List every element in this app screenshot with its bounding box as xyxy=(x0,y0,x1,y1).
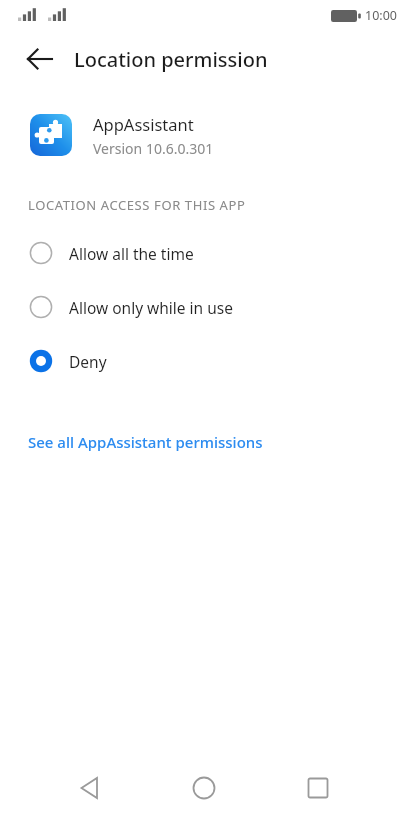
staticText: Location permission xyxy=(74,46,268,73)
staticText: See all AppAssistant permissions xyxy=(28,432,263,452)
staticText: Allow only while in use xyxy=(69,297,233,318)
staticText: LOCATION ACCESS FOR THIS APP xyxy=(28,196,246,214)
button[interactable]: Recents xyxy=(294,764,342,812)
button[interactable]: Back xyxy=(18,37,62,81)
staticText: Version 10.6.0.301 xyxy=(93,139,214,158)
button[interactable]: Home xyxy=(180,764,228,812)
button[interactable]: Back xyxy=(66,764,114,812)
staticText: AppAssistant xyxy=(93,113,194,135)
staticText: Allow all the time xyxy=(69,243,194,264)
button[interactable]: Deny xyxy=(0,334,408,388)
staticText: 10:00 xyxy=(365,7,397,24)
button[interactable]: Allow all the time xyxy=(0,226,408,280)
staticText: Deny xyxy=(69,351,107,372)
button[interactable]: Allow only while in use xyxy=(0,280,408,334)
button[interactable]: See all AppAssistant permissions xyxy=(0,426,408,458)
